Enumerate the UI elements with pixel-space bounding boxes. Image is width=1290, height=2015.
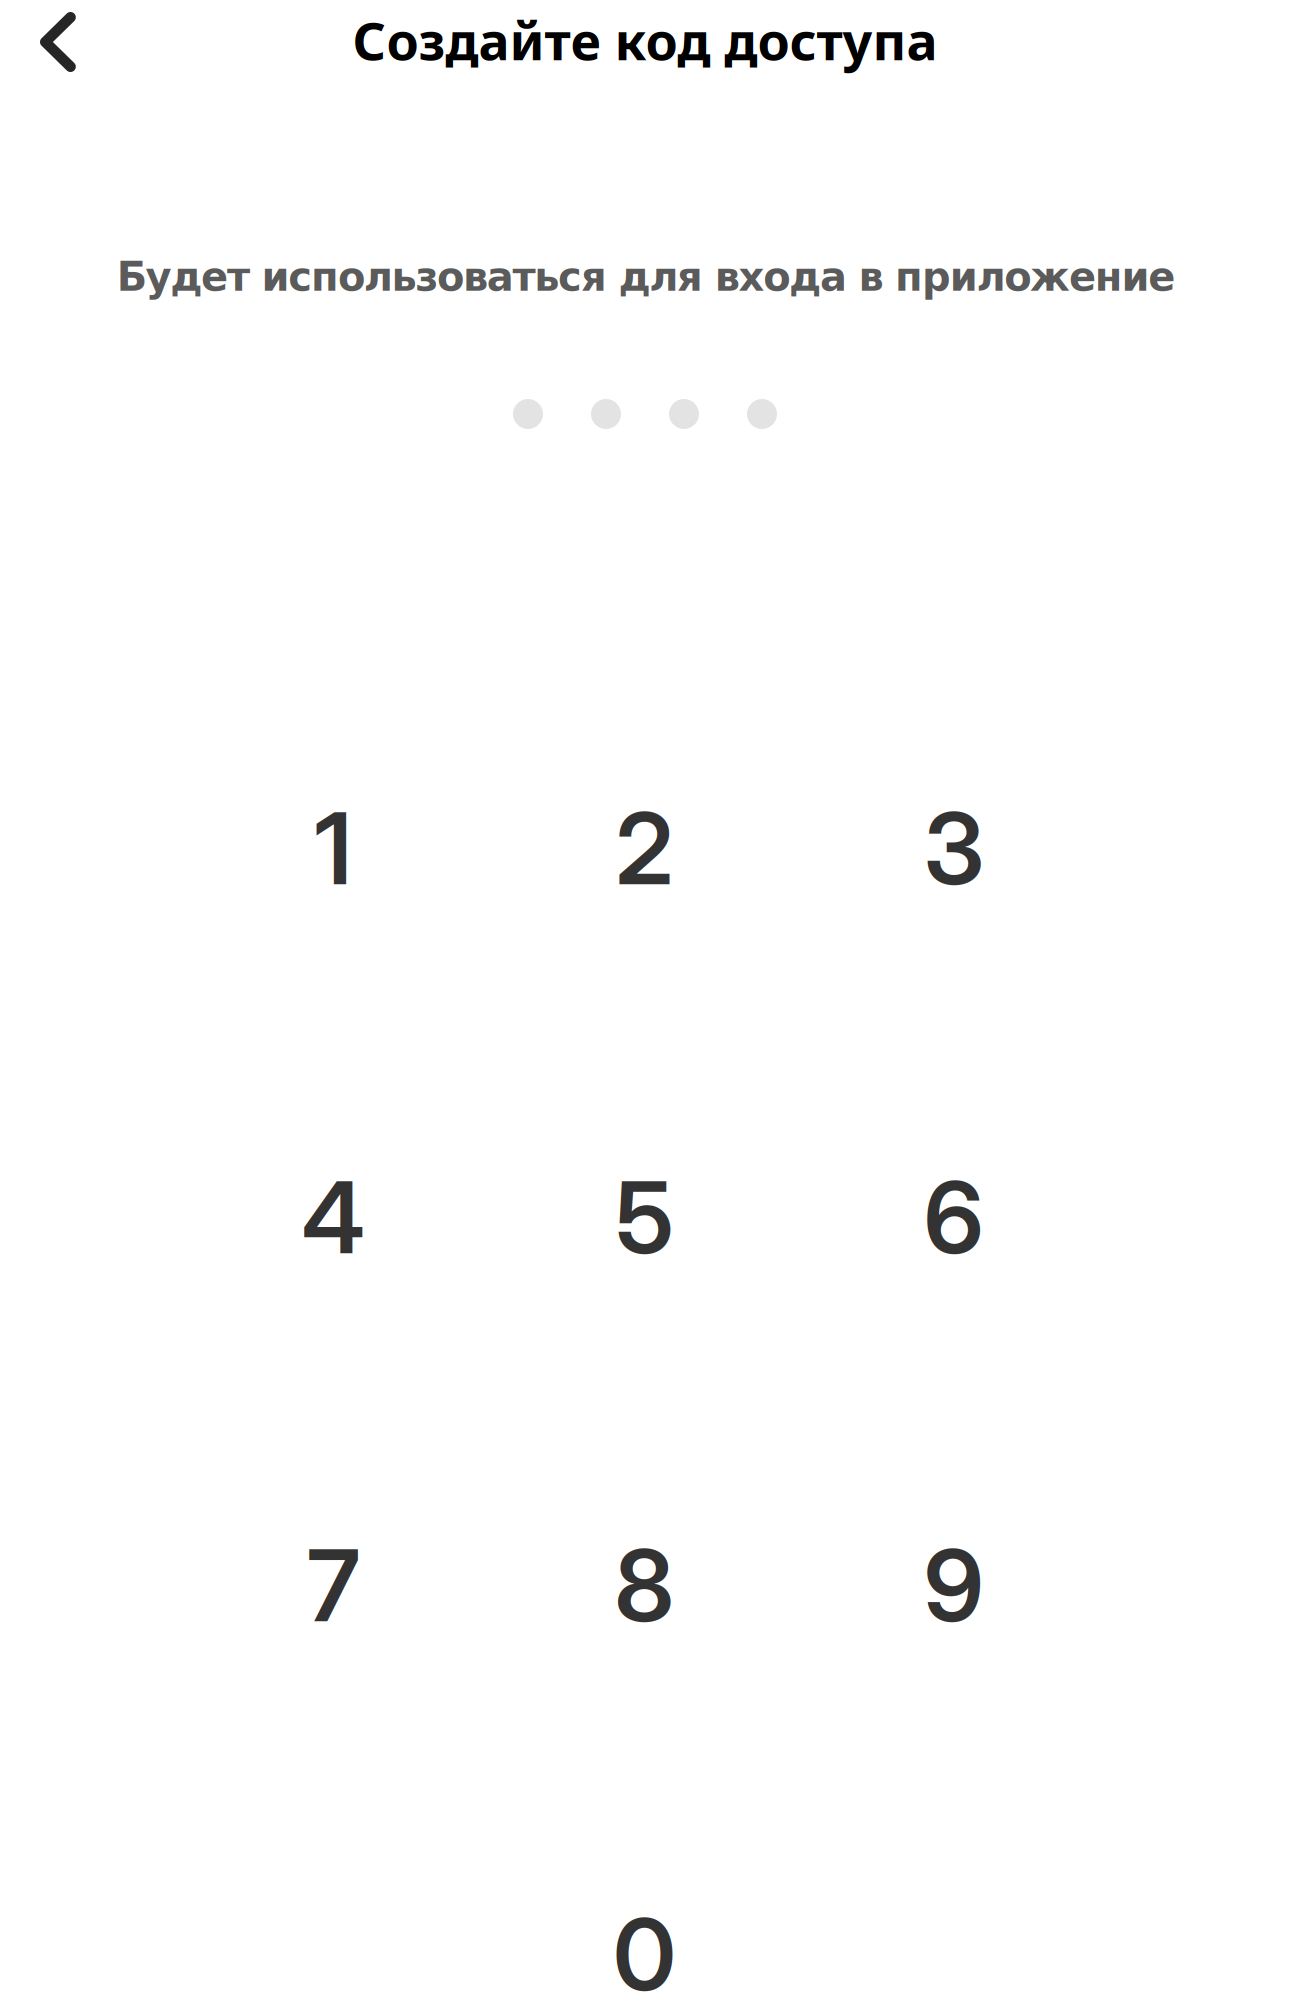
button[interactable]: 1: [193, 718, 473, 978]
button[interactable]: 4: [193, 1087, 473, 1347]
staticText: 0: [613, 1895, 676, 2014]
staticText: 6: [924, 1158, 984, 1277]
staticText: 7: [307, 1526, 360, 1645]
staticText: 9: [924, 1526, 984, 1645]
button[interactable]: 5: [504, 1087, 784, 1347]
staticText: 4: [301, 1158, 365, 1277]
button[interactable]: 2: [504, 718, 784, 978]
button[interactable]: 6: [814, 1087, 1094, 1347]
button[interactable]: 7: [193, 1455, 473, 1715]
staticText: 5: [615, 1158, 673, 1277]
button[interactable]: 3: [814, 718, 1094, 978]
staticText: 2: [615, 789, 673, 908]
staticText: 1: [314, 789, 352, 908]
staticText: Будет использоваться для входа в приложе…: [117, 254, 1175, 300]
button[interactable]: 8: [504, 1455, 784, 1715]
staticText: Создайте код доступа: [352, 5, 937, 75]
staticText: 8: [614, 1526, 674, 1645]
button[interactable]: 9: [814, 1455, 1094, 1715]
button[interactable]: 0: [504, 1824, 784, 2015]
button[interactable]: Назад: [8, 0, 108, 84]
staticText: 3: [924, 789, 984, 908]
